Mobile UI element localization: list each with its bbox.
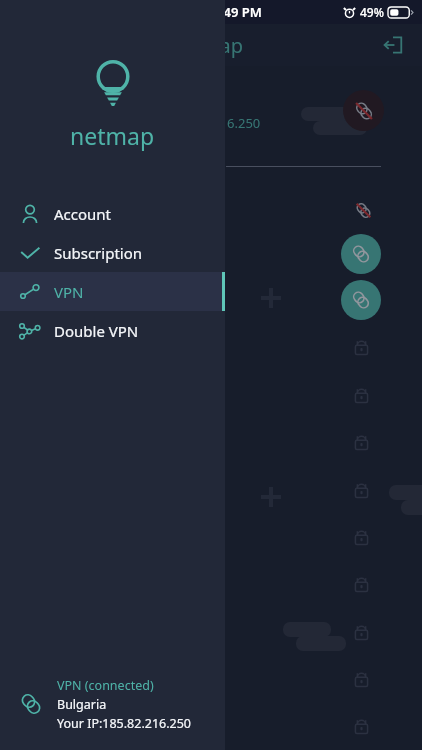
button[interactable]: Locked — [348, 476, 374, 502]
button[interactable]: Locked — [348, 712, 374, 738]
staticText: Your IP:185.82.216.250 — [57, 715, 192, 732]
button[interactable]: Disconnect — [343, 90, 384, 131]
staticText: VPN (connected) — [57, 677, 154, 694]
button[interactable]: Locked — [348, 333, 374, 359]
staticText: Double VPN — [54, 321, 139, 341]
button[interactable]: Log out — [378, 30, 408, 60]
button[interactable]: Connected — [341, 234, 381, 274]
button[interactable]: Connected — [341, 280, 381, 320]
button[interactable]: Locked — [348, 570, 374, 596]
button[interactable]: Double VPN — [0, 311, 225, 350]
staticText: Bulgaria — [57, 696, 107, 713]
staticText: 10:49 PM — [205, 3, 262, 21]
button[interactable]: Locked — [348, 428, 374, 454]
staticText: 185.82.216.250 — [168, 114, 261, 132]
button[interactable]: Locked — [348, 665, 374, 691]
button[interactable]: Locked — [348, 618, 374, 644]
staticText: Subscription — [54, 243, 143, 263]
staticText: netmap — [70, 120, 155, 151]
button[interactable]: Locked — [348, 381, 374, 407]
staticText: VPN — [54, 282, 84, 302]
button[interactable]: VPN — [0, 272, 225, 311]
button[interactable]: Account — [0, 194, 225, 233]
button[interactable]: Locked — [348, 523, 374, 549]
button[interactable]: VPN (connected) — [0, 666, 225, 742]
staticText: 49% — [360, 4, 384, 20]
button[interactable]: Subscription — [0, 233, 225, 272]
staticText: Account — [54, 204, 112, 224]
staticText: netmap — [170, 32, 244, 59]
